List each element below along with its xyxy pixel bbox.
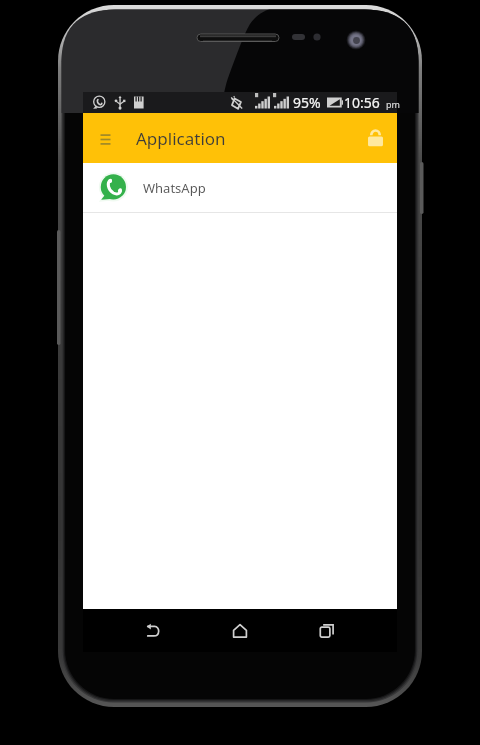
- button[interactable]: Recent apps: [306, 609, 348, 652]
- staticText: WhatsApp: [143, 179, 206, 197]
- staticText: 95%: [293, 93, 321, 112]
- staticText: pm: [386, 98, 400, 110]
- button[interactable]: Back: [131, 609, 173, 652]
- staticText: Application: [136, 127, 226, 150]
- button[interactable]: WhatsApp: [83, 163, 397, 212]
- staticText: 10:56: [344, 93, 380, 112]
- button[interactable]: Open navigation menu: [91, 124, 119, 152]
- button[interactable]: Lock: [362, 125, 388, 151]
- button[interactable]: Home: [219, 609, 261, 652]
